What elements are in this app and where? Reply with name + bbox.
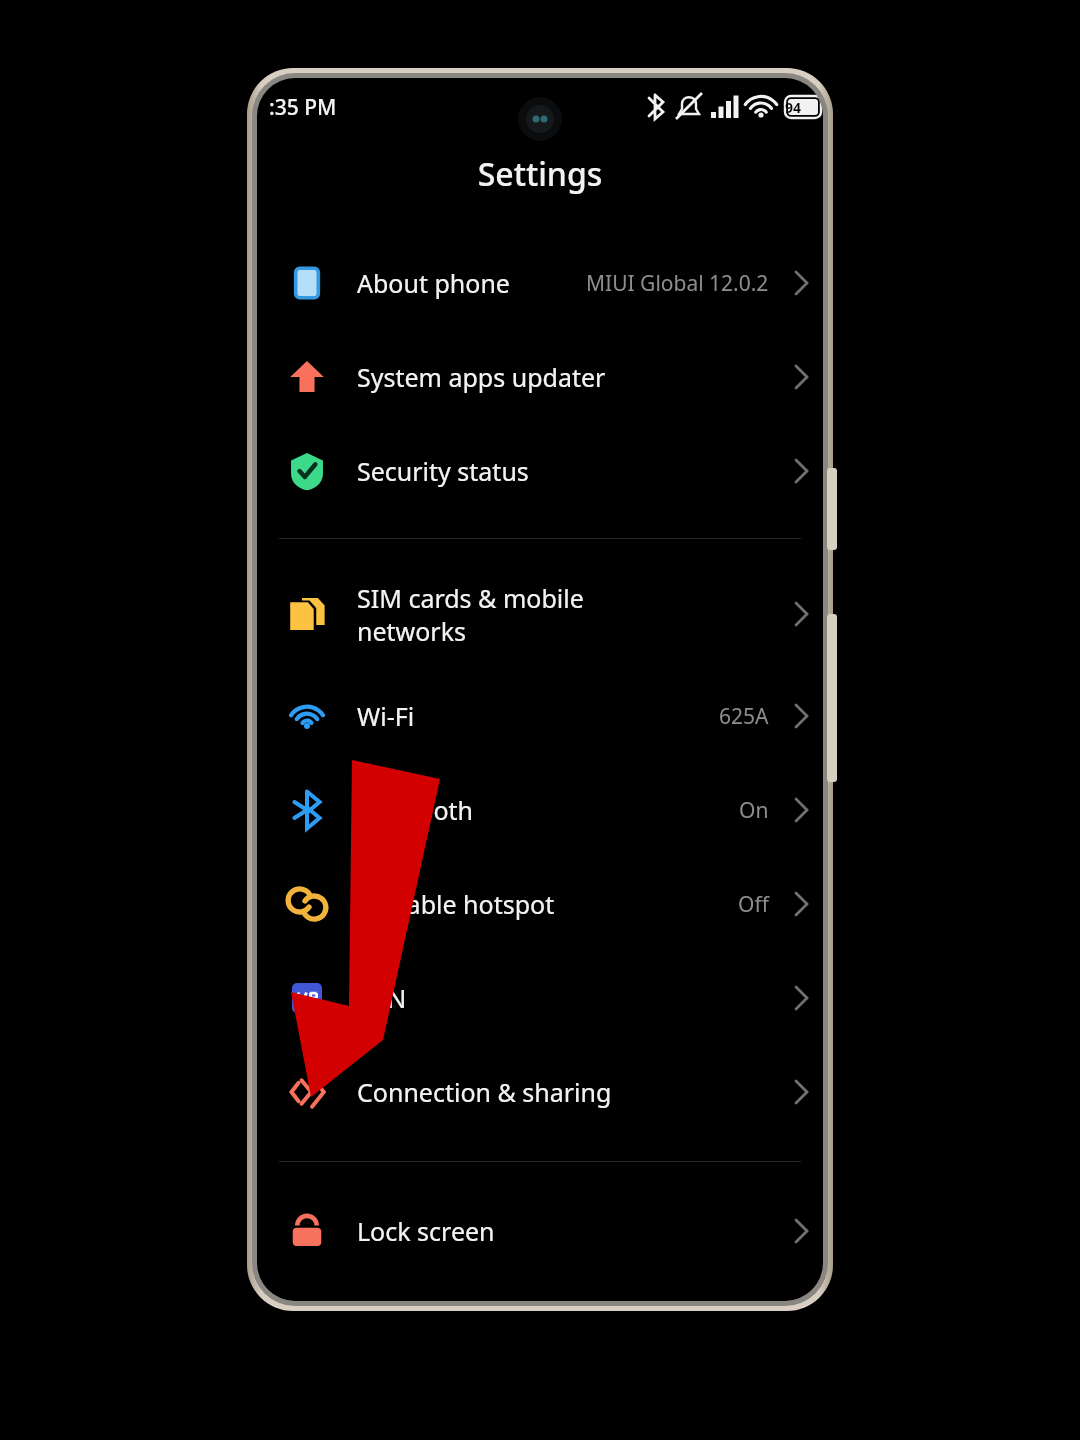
staticText: Bluetooth <box>357 793 731 827</box>
other: Bluetooth <box>286 789 328 831</box>
other: Connection and sharing <box>286 1071 328 1113</box>
staticText: Portable hotspot <box>357 887 730 921</box>
other: Security status <box>286 450 328 492</box>
other: Lock screen <box>286 1210 328 1252</box>
staticText: Connection & sharing <box>357 1075 771 1109</box>
button[interactable]: About phone <box>257 236 823 330</box>
staticText: VPN <box>357 981 771 1015</box>
staticText: SIM cards & mobile networks <box>357 581 771 648</box>
staticText: Security status <box>357 454 771 488</box>
staticText: MIUI Global 12.0.2 <box>586 269 769 298</box>
button[interactable]: SIM cards and mobile networks <box>257 559 823 669</box>
button[interactable]: VPN <box>257 951 823 1045</box>
button[interactable]: Security status <box>257 424 823 518</box>
staticText: Lock screen <box>357 1214 771 1248</box>
other: SIM cards and mobile networks <box>286 593 328 635</box>
other: Wi-Fi <box>286 695 328 737</box>
button[interactable]: System apps updater <box>257 330 823 424</box>
staticText: Wi-Fi <box>357 699 711 733</box>
button[interactable]: Connection and sharing <box>257 1045 823 1139</box>
staticText: :35 PM <box>269 93 337 122</box>
staticText: 94 <box>785 98 802 117</box>
staticText: 625A <box>719 702 769 731</box>
other: Portable hotspot <box>286 883 328 925</box>
button[interactable]: Wi-Fi <box>257 669 823 763</box>
staticText: About phone <box>357 266 578 300</box>
other: System apps updater <box>286 356 328 398</box>
staticText: System apps updater <box>357 360 771 394</box>
staticText: Off <box>738 890 769 919</box>
other: About phone <box>286 262 328 304</box>
button[interactable]: Lock screen <box>257 1184 823 1278</box>
staticText: On <box>739 796 769 825</box>
other: VPN <box>292 983 322 1013</box>
button[interactable]: Bluetooth <box>257 763 823 857</box>
button[interactable]: Portable hotspot <box>257 857 823 951</box>
staticText: Settings <box>257 152 823 196</box>
